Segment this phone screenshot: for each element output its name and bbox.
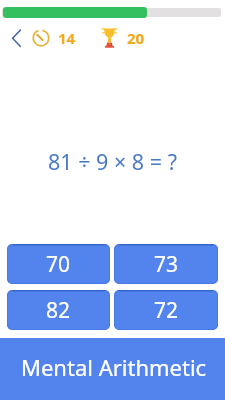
staticText: 73 [154,250,179,279]
staticText: 72 [154,296,179,325]
button[interactable]: 73 [114,244,218,284]
other: Timer [32,29,50,47]
button[interactable]: 70 [7,244,110,284]
staticText: Mental Arithmetic [21,352,207,382]
staticText: 70 [46,250,71,279]
staticText: 14 [58,28,76,48]
staticText: 82 [46,296,71,325]
button[interactable]: 82 [7,290,110,330]
staticText: 20 [127,28,145,48]
button[interactable]: Mental Arithmetic [0,338,225,400]
button[interactable]: Back [4,26,28,50]
other: Trophy [99,27,120,48]
staticText: 81 ÷ 9 × 8 = ? [0,147,225,176]
button[interactable]: 72 [114,290,218,330]
